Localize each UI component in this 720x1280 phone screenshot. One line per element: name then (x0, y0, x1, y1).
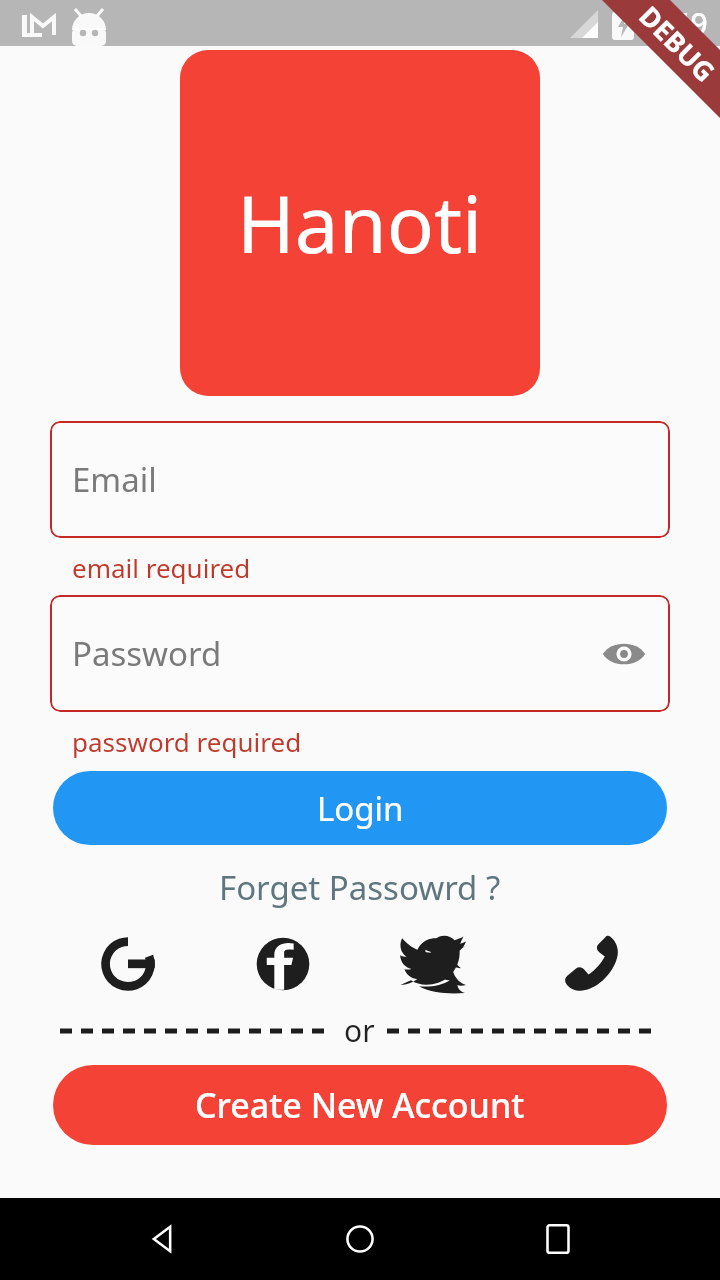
staticText: 4:49 (648, 3, 708, 44)
button[interactable]: Back (126, 1203, 198, 1275)
button[interactable]: Sign in with Twitter (405, 932, 469, 996)
staticText: Login (317, 786, 404, 831)
button[interactable]: Sign in with Google (96, 932, 160, 996)
staticText: Create New Account (195, 1082, 525, 1128)
staticText: DEBUG (631, 0, 720, 89)
button[interactable]: Recent apps (522, 1203, 594, 1275)
button[interactable]: Forget Passowrd ? (207, 861, 513, 914)
staticText: Password (72, 631, 222, 676)
button[interactable]: Sign in with phone (560, 932, 624, 996)
staticText: or (344, 1010, 375, 1051)
button[interactable]: Login (53, 771, 667, 845)
button[interactable]: Sign in with Facebook (251, 932, 315, 996)
button[interactable]: Home (324, 1203, 396, 1275)
staticText: Forget Passowrd ? (219, 865, 501, 910)
staticText: email required (72, 550, 251, 585)
button[interactable]: Email (50, 421, 670, 538)
staticText: Hanoti (237, 170, 483, 276)
button[interactable]: Create New Account (53, 1065, 667, 1145)
staticText: password required (72, 724, 302, 759)
button[interactable]: Password (50, 595, 670, 712)
button[interactable]: Show password (598, 628, 650, 680)
staticText: Email (72, 457, 157, 502)
